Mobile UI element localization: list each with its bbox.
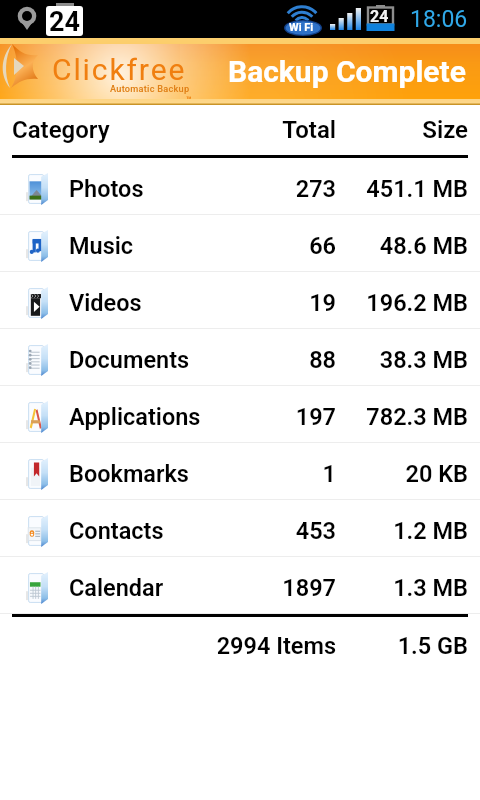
button[interactable]: Videos bbox=[0, 272, 480, 329]
button[interactable]: Documents bbox=[0, 329, 480, 386]
button[interactable]: Applications bbox=[0, 386, 480, 443]
staticText: 1.2 MB bbox=[336, 517, 468, 545]
staticText: Contacts bbox=[69, 517, 164, 545]
staticText: Calendar bbox=[69, 574, 164, 602]
staticText: 453 bbox=[218, 517, 336, 545]
staticText: 1 bbox=[218, 460, 336, 488]
staticText: 1.3 MB bbox=[336, 574, 468, 602]
staticText: ™ bbox=[186, 95, 192, 105]
staticText: 19 bbox=[218, 289, 336, 317]
staticText: Category bbox=[12, 116, 110, 144]
staticText: Music bbox=[69, 232, 134, 260]
staticText: Videos bbox=[69, 289, 142, 317]
button[interactable]: Photos bbox=[0, 158, 480, 215]
staticText: 38.3 MB bbox=[336, 346, 468, 374]
staticText: 273 bbox=[218, 175, 336, 203]
button[interactable]: Music bbox=[0, 215, 480, 272]
staticText: 66 bbox=[218, 232, 336, 260]
staticText: Automatic Backup bbox=[110, 83, 190, 94]
staticText: Size bbox=[336, 116, 468, 144]
staticText: 20 KB bbox=[336, 460, 468, 488]
staticText: Documents bbox=[69, 346, 190, 374]
staticText: 197 bbox=[218, 403, 336, 431]
staticText: 24 bbox=[370, 7, 389, 26]
staticText: Bookmarks bbox=[69, 460, 189, 488]
staticText: 48.6 MB bbox=[336, 232, 468, 260]
staticText: 1.5 GB bbox=[336, 632, 468, 660]
staticText: Clickfree bbox=[52, 52, 187, 87]
staticText: Applications bbox=[69, 403, 201, 431]
staticText: 451.1 MB bbox=[336, 175, 468, 203]
staticText: Photos bbox=[69, 175, 144, 203]
staticText: 1897 bbox=[218, 574, 336, 602]
staticText: 2994 Items bbox=[138, 632, 336, 660]
button[interactable]: Contacts bbox=[0, 500, 480, 557]
staticText: 782.3 MB bbox=[336, 403, 468, 431]
staticText: 24 bbox=[49, 6, 80, 36]
staticText: 18:06 bbox=[410, 6, 468, 33]
staticText: Backup Complete bbox=[228, 54, 466, 89]
staticText: Total bbox=[208, 116, 336, 144]
staticText: 196.2 MB bbox=[336, 289, 468, 317]
staticText: Wi Fi bbox=[289, 21, 314, 34]
button[interactable]: Calendar bbox=[0, 557, 480, 614]
staticText: 88 bbox=[218, 346, 336, 374]
button[interactable]: Bookmarks bbox=[0, 443, 480, 500]
